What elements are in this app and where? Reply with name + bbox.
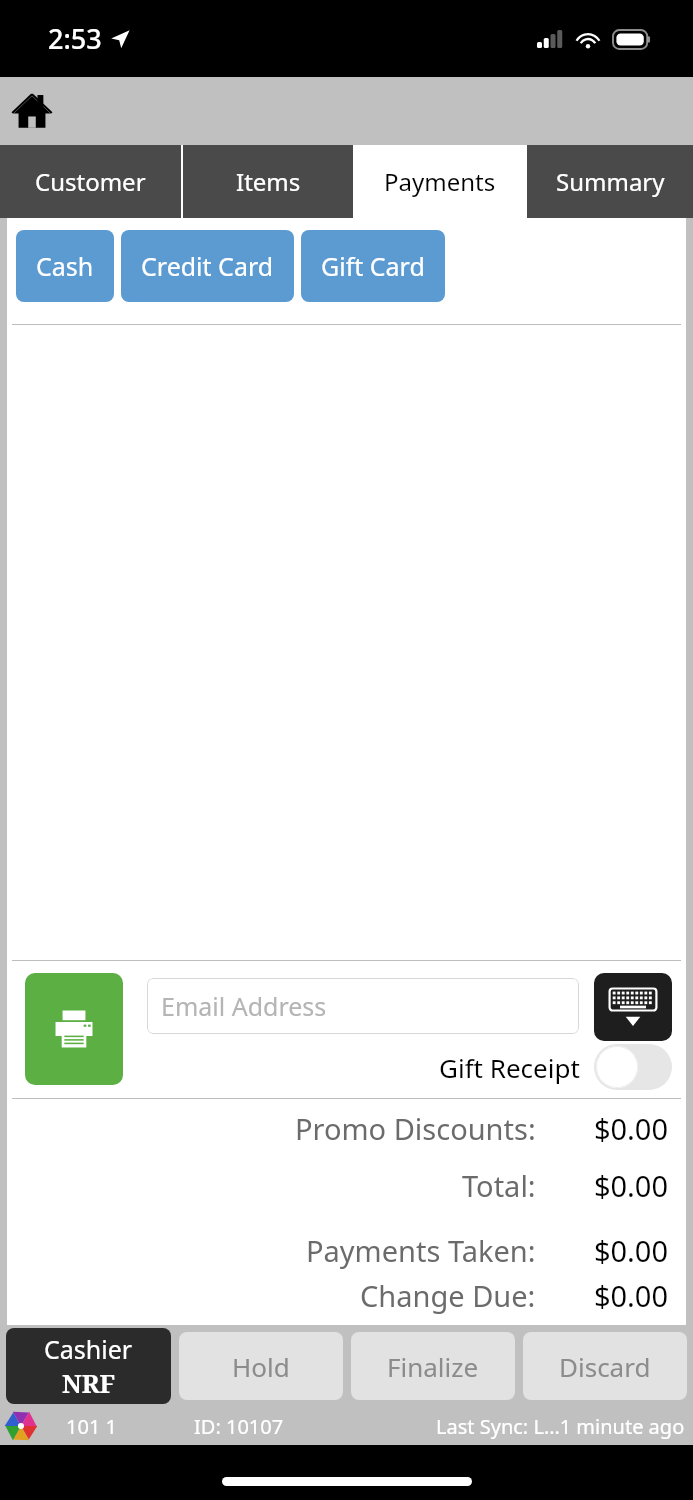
button[interactable]: Gift Receipt toggle (594, 1044, 672, 1090)
staticText: Gift Receipt (439, 1050, 580, 1085)
staticText: Email Address (161, 989, 327, 1023)
staticText: $0.00 (558, 1276, 668, 1315)
staticText: ID: 10107 (194, 1413, 284, 1440)
button[interactable]: Discard (523, 1332, 687, 1400)
staticText: Total: (462, 1166, 536, 1205)
staticText: Payments Taken: (306, 1231, 536, 1270)
staticText: Finalize (387, 1349, 479, 1384)
staticText: 2:53 (48, 20, 102, 57)
button[interactable]: Customer (0, 145, 181, 218)
staticText: $0.00 (558, 1166, 668, 1205)
button[interactable]: Hide keyboard (594, 973, 672, 1041)
staticText: Discard (559, 1349, 651, 1384)
button[interactable]: Payments (355, 145, 525, 218)
button[interactable]: Items (183, 145, 353, 218)
button[interactable]: Summary (527, 145, 693, 218)
staticText: Credit Card (141, 249, 274, 283)
staticText: Cashier (44, 1332, 133, 1366)
staticText: Customer (35, 165, 146, 198)
staticText: Promo Discounts: (295, 1109, 536, 1148)
staticText: Payments (384, 165, 496, 198)
button[interactable]: Cash (16, 230, 114, 302)
button[interactable]: Credit Card (121, 230, 294, 302)
button[interactable]: Home (8, 87, 56, 135)
staticText: NRF (62, 1366, 116, 1400)
button[interactable]: Gift Card (301, 230, 445, 302)
staticText: Last Sync: L…1 minute ago (436, 1413, 685, 1440)
staticText: Summary (556, 165, 665, 198)
button[interactable]: Finalize (351, 1332, 515, 1400)
staticText: 101 1 (66, 1413, 117, 1440)
staticText: Cash (36, 249, 94, 283)
staticText: Gift Card (321, 249, 425, 283)
staticText: Change Due: (360, 1276, 536, 1315)
button[interactable]: Print receipt (25, 973, 123, 1085)
button[interactable]: Hold (179, 1332, 343, 1400)
staticText: Hold (232, 1349, 290, 1384)
staticText: Items (236, 165, 301, 198)
staticText: $0.00 (558, 1109, 668, 1148)
staticText: $0.00 (558, 1231, 668, 1270)
button[interactable]: Cashier (6, 1328, 171, 1404)
button[interactable]: Email Address (147, 978, 579, 1034)
